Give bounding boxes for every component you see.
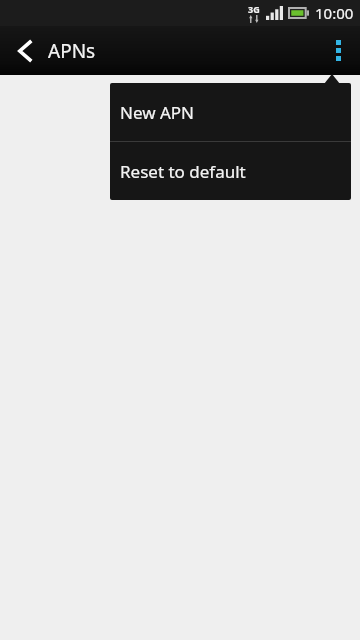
button[interactable]: Reset to default bbox=[110, 142, 351, 200]
staticText: 3G bbox=[248, 3, 260, 15]
staticText: New APN bbox=[120, 101, 195, 124]
button[interactable]: New APN bbox=[110, 83, 351, 141]
staticText: 10:00 bbox=[315, 3, 354, 23]
button[interactable]: More options bbox=[316, 26, 360, 75]
button[interactable]: Back bbox=[0, 26, 96, 75]
other: Back bbox=[0, 26, 48, 75]
staticText: APNs bbox=[48, 38, 96, 64]
staticText: Reset to default bbox=[120, 160, 246, 183]
